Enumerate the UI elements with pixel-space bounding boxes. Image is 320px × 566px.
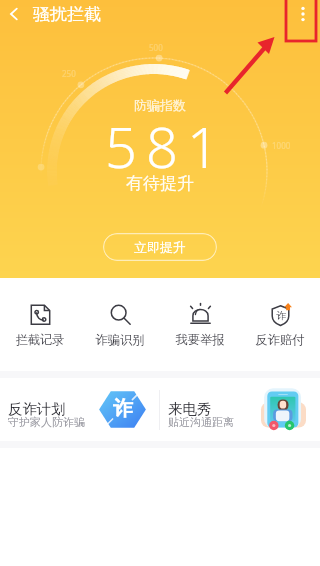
button[interactable]: 诈: [240, 303, 320, 347]
staticText: 来电秀: [168, 400, 212, 418]
staticText: 500: [149, 42, 163, 53]
staticText: 诈: [276, 309, 286, 322]
staticText: 反诈赔付: [255, 332, 305, 347]
staticText: 诈: [113, 396, 133, 421]
staticText: 骚扰拦截: [33, 4, 101, 25]
button[interactable]: 诈骗识别: [80, 303, 160, 347]
staticText: 250: [62, 68, 76, 79]
staticText: 有待提升: [126, 173, 194, 194]
staticText: 立即提升: [134, 239, 186, 255]
staticText: 拦截记录: [15, 332, 65, 347]
staticText: 诈骗识别: [95, 332, 145, 347]
staticText: 581: [105, 108, 228, 184]
staticText: 我要举报: [175, 332, 225, 347]
button[interactable]: 来电秀: [160, 378, 320, 423]
staticText: 贴近沟通距离: [168, 415, 234, 429]
staticText: 守护家人防诈骗: [8, 415, 85, 429]
staticText: 1000: [272, 140, 291, 151]
button[interactable]: 反诈计划: [0, 378, 159, 423]
button[interactable]: 立即提升: [103, 233, 217, 261]
button[interactable]: 拦截记录: [0, 303, 80, 347]
button[interactable]: 我要举报: [160, 303, 240, 347]
button[interactable]: Back: [0, 0, 28, 28]
staticText: 防骗指数: [134, 97, 186, 113]
button[interactable]: More options: [289, 0, 317, 28]
staticText: 反诈计划: [8, 400, 66, 418]
